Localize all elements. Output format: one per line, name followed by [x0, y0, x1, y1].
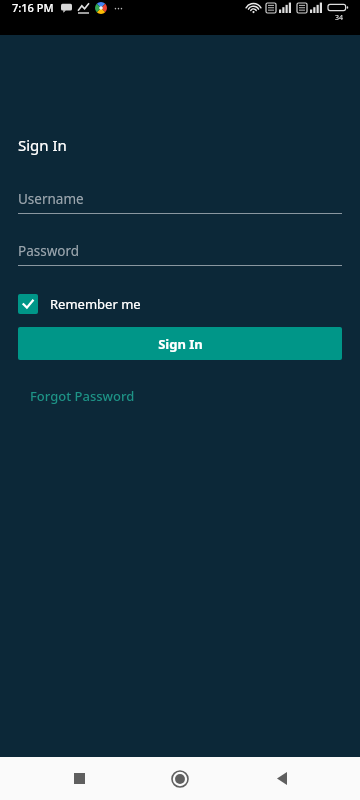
button[interactable]: Back: [259, 757, 305, 800]
button[interactable]: Remember me: [14, 290, 145, 318]
staticText: Sign In: [18, 135, 67, 155]
button[interactable]: Home: [157, 757, 203, 800]
staticText: Forgot Password: [30, 387, 135, 405]
button[interactable]: Username: [18, 188, 342, 210]
staticText: 34: [335, 13, 344, 23]
staticText: ···: [114, 0, 123, 15]
staticText: Password: [18, 242, 80, 260]
button[interactable]: Sign In: [18, 327, 342, 360]
staticText: 7:16 PM: [12, 0, 54, 15]
button[interactable]: Password: [18, 240, 342, 262]
button[interactable]: Recent apps: [56, 757, 102, 800]
button[interactable]: Forgot Password: [26, 384, 139, 408]
staticText: Sign In: [158, 335, 203, 353]
staticText: Remember me: [50, 295, 141, 313]
staticText: Username: [18, 190, 84, 208]
